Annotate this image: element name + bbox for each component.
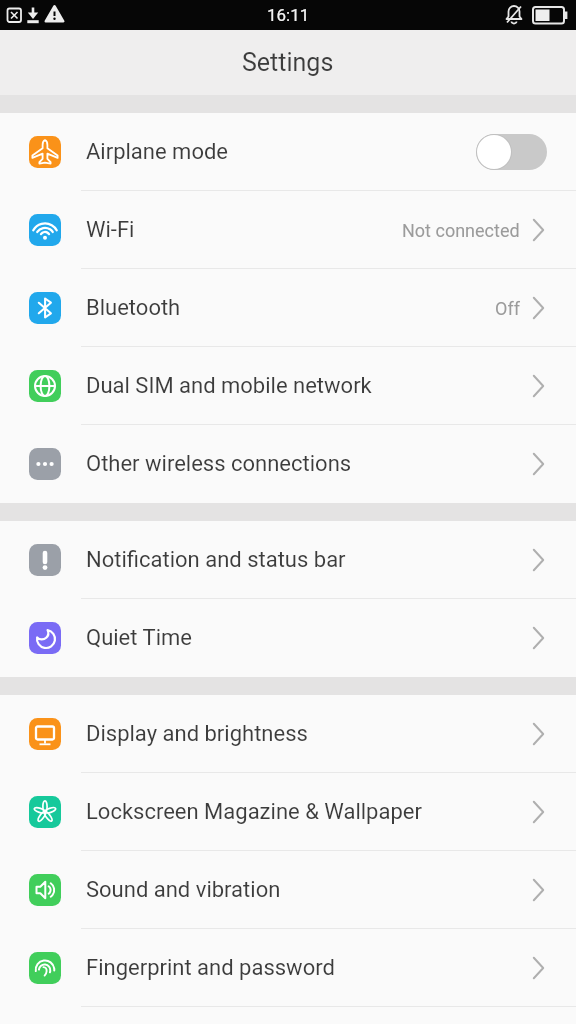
- staticText: Sound and vibration: [86, 877, 281, 903]
- button[interactable]: Quiet Time: [0, 599, 576, 677]
- staticText: Display and brightness: [86, 721, 308, 747]
- staticText: Not connected: [402, 220, 520, 241]
- staticText: Settings: [242, 48, 334, 77]
- staticText: Fingerprint and password: [86, 955, 335, 981]
- button[interactable]: Airplane mode: [0, 113, 576, 191]
- staticText: Off: [495, 298, 520, 319]
- button[interactable]: Other wireless connections: [0, 425, 576, 503]
- button[interactable]: [476, 134, 547, 170]
- button[interactable]: Dual SIM and mobile network: [0, 347, 576, 425]
- button[interactable]: Fingerprint and password: [0, 929, 576, 1007]
- staticText: Airplane mode: [86, 139, 229, 165]
- button[interactable]: Wi-Fi: [0, 191, 576, 269]
- staticText: Other wireless connections: [86, 451, 352, 477]
- button[interactable]: Display and brightness: [0, 695, 576, 773]
- staticText: 16:11: [267, 5, 310, 25]
- button[interactable]: Notification and status bar: [0, 521, 576, 599]
- staticText: Wi-Fi: [86, 217, 135, 243]
- button[interactable]: Sound and vibration: [0, 851, 576, 929]
- button[interactable]: Bluetooth: [0, 269, 576, 347]
- staticText: Notification and status bar: [86, 547, 346, 573]
- button[interactable]: Lockscreen Magazine & Wallpaper: [0, 773, 576, 851]
- staticText: Bluetooth: [86, 295, 181, 321]
- staticText: Quiet Time: [86, 625, 192, 651]
- staticText: Dual SIM and mobile network: [86, 373, 372, 399]
- staticText: Lockscreen Magazine & Wallpaper: [86, 799, 422, 825]
